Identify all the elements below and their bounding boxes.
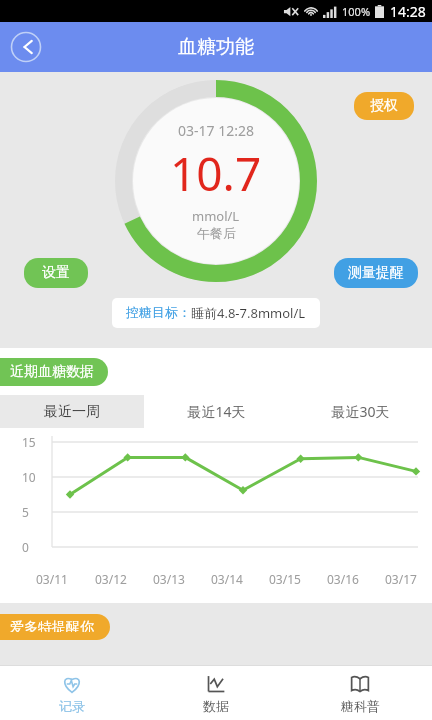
staticText: 5 (22, 504, 29, 520)
staticText: 控糖目标： (126, 304, 191, 320)
staticText: 授权 (370, 97, 398, 115)
staticText: 数据 (203, 698, 229, 714)
staticText: 10.7 (170, 142, 262, 205)
staticText: 14:28 (390, 2, 426, 21)
staticText: 03/12 (95, 571, 127, 587)
staticText: 0 (22, 539, 29, 555)
button[interactable]: 近期血糖数据 (0, 358, 108, 386)
button[interactable]: 授权 (354, 92, 414, 120)
staticText: 10 (22, 469, 36, 485)
button[interactable]: 最近一周 (0, 395, 144, 428)
button[interactable]: 设置 (24, 258, 88, 288)
button[interactable]: 控糖目标： (112, 298, 320, 328)
button[interactable]: 记录 (0, 666, 144, 720)
staticText: 爱多特提醒你 (10, 619, 94, 632)
staticText: 03/11 (36, 571, 68, 587)
button[interactable]: 数据 (144, 666, 288, 720)
staticText: 记录 (59, 698, 85, 714)
button[interactable]: 爱多特提醒你 (0, 614, 110, 640)
staticText: 最近30天 (331, 402, 390, 421)
staticText: 03-17 12:28 (178, 121, 254, 140)
staticText: 设置 (42, 264, 70, 282)
button[interactable]: 最近30天 (288, 395, 432, 428)
staticText: 睡前4.8-7.8mmol/L (191, 304, 306, 322)
staticText: mmol/L (192, 207, 240, 225)
staticText: 100% (342, 4, 371, 19)
staticText: 最近一周 (44, 403, 100, 421)
staticText: 糖科普 (341, 698, 380, 714)
staticText: 03/15 (269, 571, 301, 587)
staticText: 血糖功能 (178, 35, 254, 59)
staticText: 03/13 (153, 571, 185, 587)
button[interactable]: Back (10, 31, 42, 63)
staticText: 测量提醒 (348, 264, 404, 282)
staticText: 03/14 (211, 571, 243, 587)
staticText: 午餐后 (197, 225, 236, 241)
staticText: 03/17 (385, 571, 417, 587)
staticText: 03/16 (327, 571, 359, 587)
button[interactable]: 最近14天 (144, 395, 288, 428)
button[interactable]: 糖科普 (288, 666, 432, 720)
button[interactable]: 测量提醒 (334, 258, 418, 288)
staticText: 15 (22, 434, 36, 450)
staticText: 近期血糖数据 (10, 363, 94, 381)
staticText: 最近14天 (187, 402, 246, 421)
